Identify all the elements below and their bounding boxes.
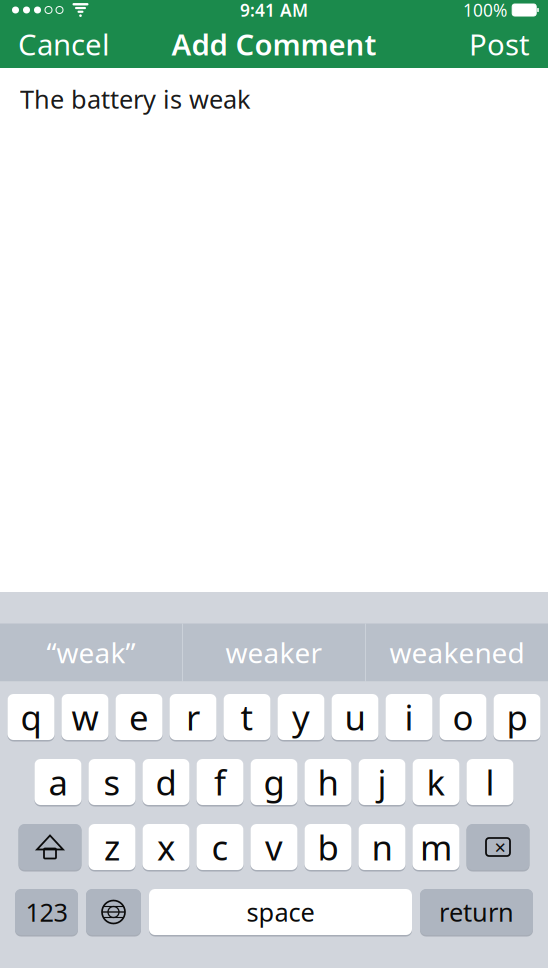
button[interactable]: v xyxy=(250,822,297,871)
staticText: e xyxy=(129,694,149,740)
button[interactable]: s xyxy=(88,757,135,806)
button[interactable]: d xyxy=(142,757,189,806)
staticText: n xyxy=(371,824,392,870)
button[interactable]: z xyxy=(88,822,135,871)
staticText: p xyxy=(506,694,527,740)
button[interactable]: n xyxy=(358,822,405,871)
button[interactable]: g xyxy=(250,757,297,806)
button[interactable]: e xyxy=(115,692,162,741)
button[interactable]: o xyxy=(439,692,486,741)
staticText: f xyxy=(214,759,226,805)
staticText: d xyxy=(155,759,176,805)
staticText: Add Comment xyxy=(171,24,376,63)
button[interactable]: return xyxy=(420,887,533,936)
staticText: s xyxy=(103,759,120,805)
staticText: weakened xyxy=(389,634,524,671)
staticText: k xyxy=(426,759,445,805)
staticText: t xyxy=(240,694,253,740)
button[interactable]: x xyxy=(142,822,189,871)
staticText: Post xyxy=(469,24,530,63)
button[interactable]: Next keyboard xyxy=(86,887,141,936)
button[interactable]: a xyxy=(34,757,81,806)
staticText: r xyxy=(186,694,200,740)
staticText: c xyxy=(211,824,228,870)
staticText: i xyxy=(404,694,413,740)
staticText: The battery is weak xyxy=(20,82,251,116)
button[interactable]: Delete xyxy=(466,822,529,871)
staticText: j xyxy=(377,759,386,805)
staticText: return xyxy=(439,895,514,929)
staticText: m xyxy=(420,824,452,870)
button[interactable]: m xyxy=(412,822,459,871)
button[interactable]: 123 xyxy=(15,887,78,936)
button[interactable]: weakened xyxy=(366,623,548,681)
staticText: g xyxy=(263,759,284,805)
button[interactable]: Post xyxy=(451,22,548,66)
button[interactable]: i xyxy=(385,692,432,741)
button[interactable]: weaker xyxy=(183,623,365,681)
staticText: v xyxy=(265,824,283,870)
staticText: × xyxy=(494,834,505,860)
staticText: 123 xyxy=(25,895,67,929)
button[interactable]: p xyxy=(493,692,540,741)
staticText: z xyxy=(104,824,120,870)
staticText: o xyxy=(452,694,473,740)
button[interactable]: Shift xyxy=(18,822,81,871)
button[interactable]: b xyxy=(304,822,351,871)
staticText: y xyxy=(292,694,310,740)
button[interactable]: “weak” xyxy=(0,623,182,681)
staticText: x xyxy=(157,824,175,870)
staticText: “weak” xyxy=(46,634,135,671)
button[interactable]: c xyxy=(196,822,243,871)
staticText: a xyxy=(48,759,67,805)
button[interactable]: w xyxy=(61,692,108,741)
button[interactable]: y xyxy=(277,692,324,741)
staticText: h xyxy=(317,759,338,805)
button[interactable]: h xyxy=(304,757,351,806)
staticText: l xyxy=(485,759,494,805)
button[interactable]: Cancel xyxy=(0,22,128,66)
button[interactable]: l xyxy=(466,757,513,806)
staticText: Cancel xyxy=(18,24,110,63)
button[interactable]: space xyxy=(149,887,412,936)
button[interactable]: q xyxy=(7,692,54,741)
button[interactable]: j xyxy=(358,757,405,806)
staticText: 100% xyxy=(463,0,507,21)
staticText: b xyxy=(317,824,338,870)
button[interactable]: k xyxy=(412,757,459,806)
staticText: weaker xyxy=(225,634,322,671)
button[interactable]: r xyxy=(169,692,216,741)
staticText: w xyxy=(71,694,98,740)
staticText: u xyxy=(344,694,365,740)
staticText: 9:41 AM xyxy=(240,0,308,21)
button[interactable]: t xyxy=(223,692,270,741)
button[interactable]: u xyxy=(331,692,378,741)
staticText: space xyxy=(246,895,314,929)
button[interactable]: f xyxy=(196,757,243,806)
staticText: q xyxy=(20,694,41,740)
